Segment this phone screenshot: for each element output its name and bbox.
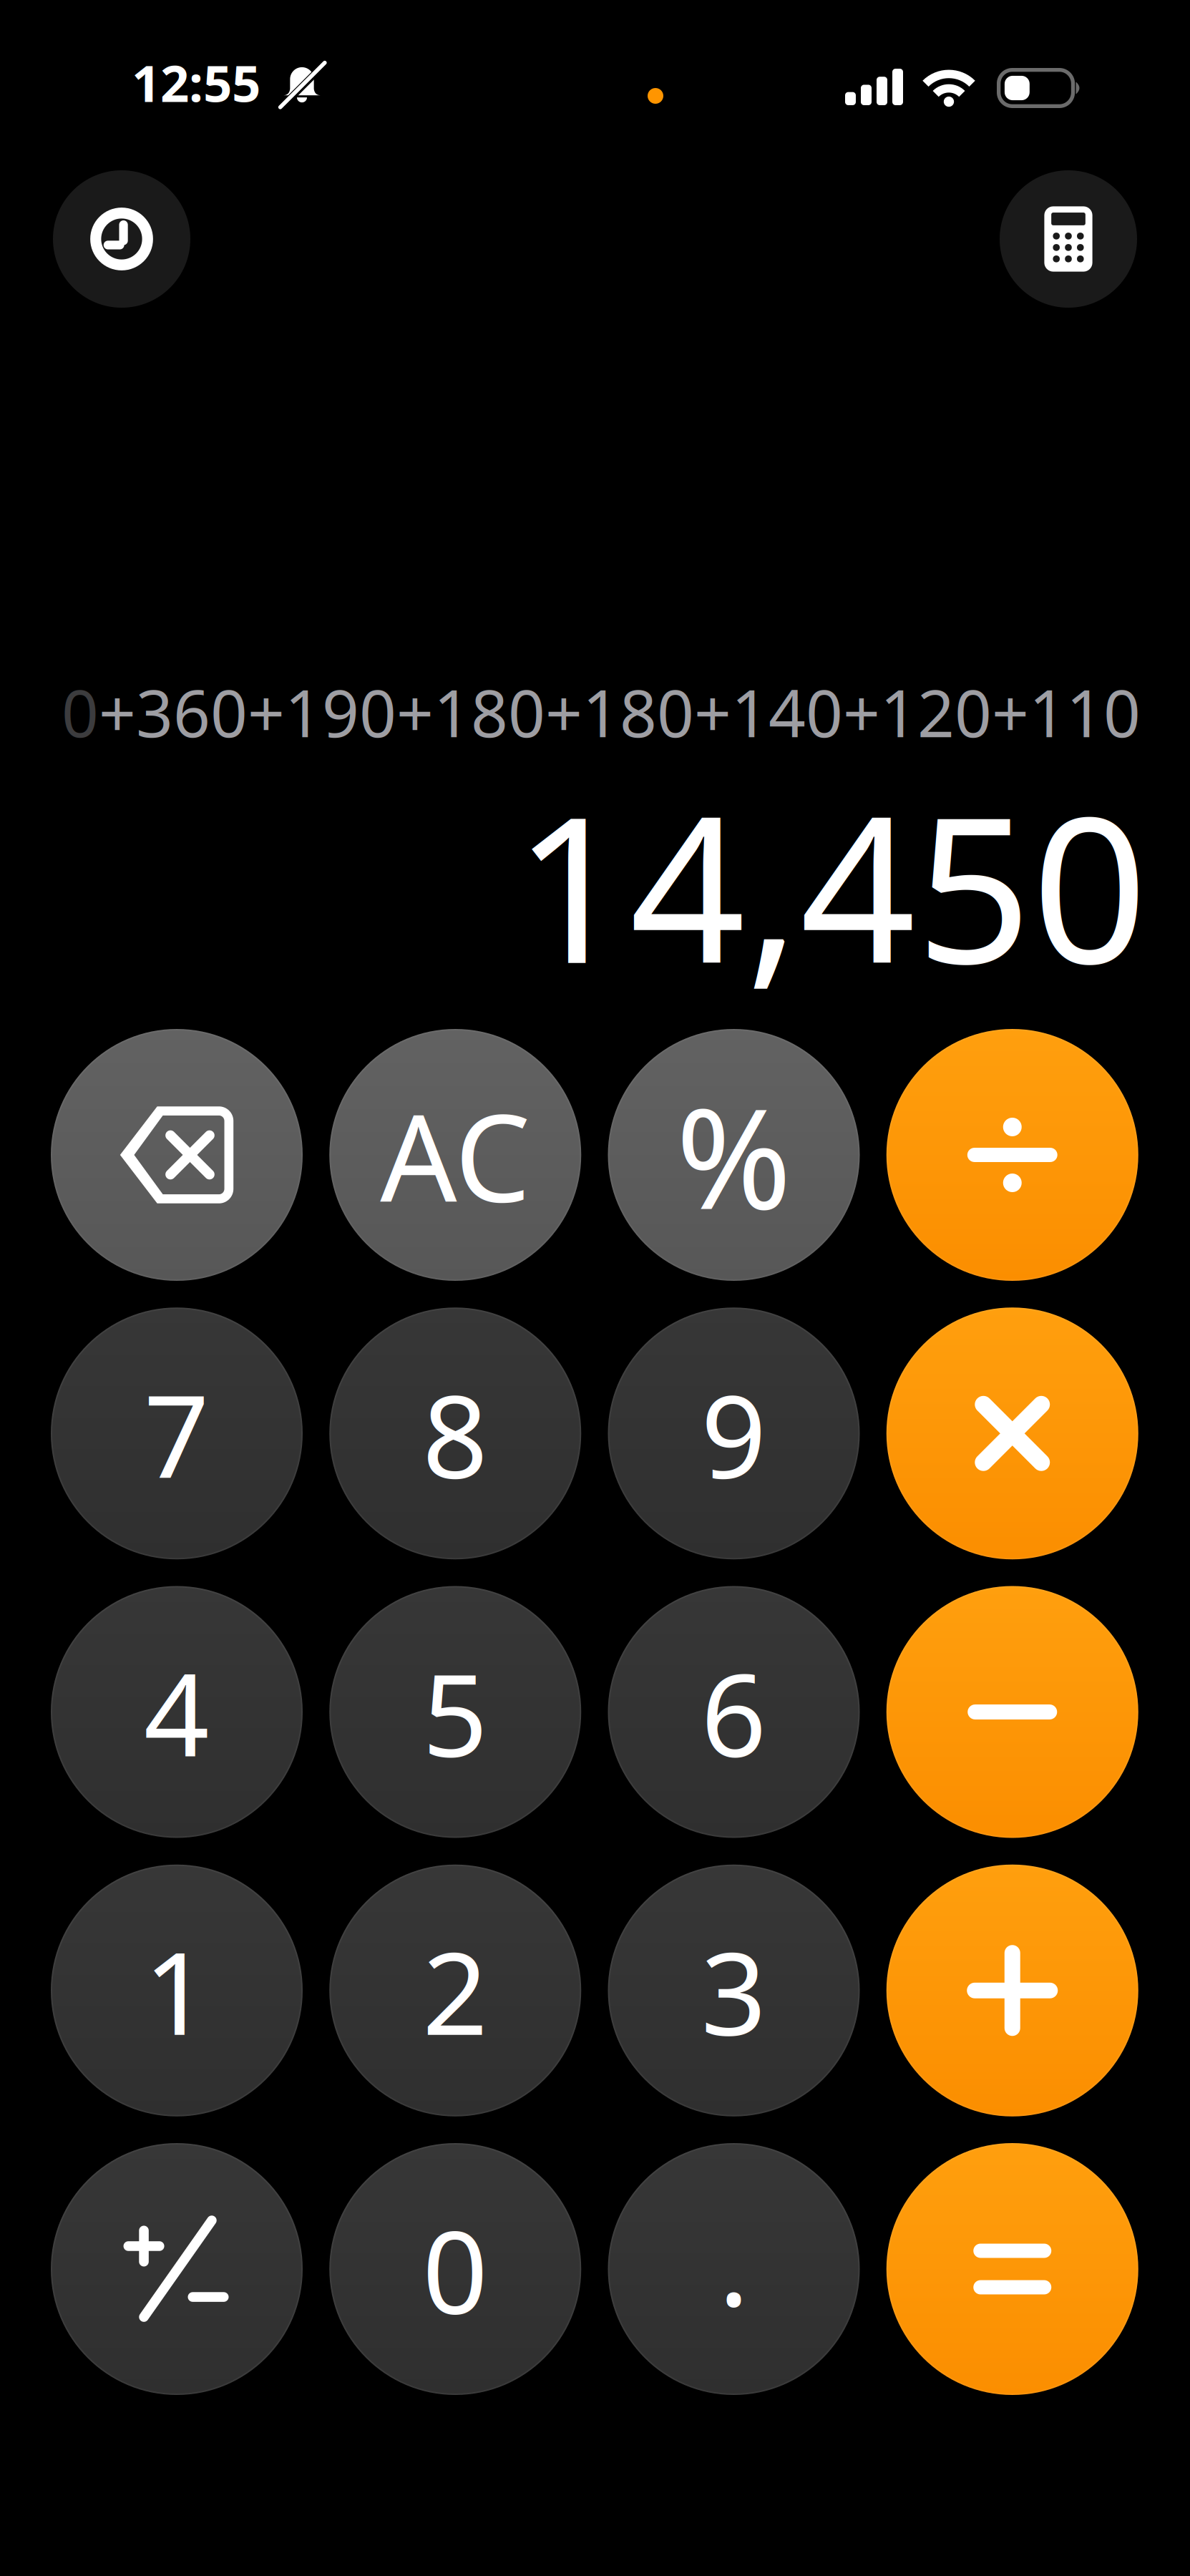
button[interactable]: % <box>608 1029 860 1281</box>
staticText: 12:55 <box>132 49 260 116</box>
staticText: +360+190+180+180+140+120+110 <box>99 669 1141 755</box>
staticText: % <box>676 1062 792 1247</box>
staticText: 5 <box>422 1636 488 1788</box>
staticText: 2 <box>422 1914 488 2067</box>
staticText: AC <box>380 1075 530 1235</box>
staticText: 0 <box>422 2193 488 2345</box>
staticText: 6 <box>701 1636 767 1788</box>
button[interactable]: Delete <box>51 1029 303 1281</box>
button[interactable]: Subtract <box>886 1586 1138 1838</box>
staticText: 14,450 <box>514 750 1148 1019</box>
button[interactable]: Plus minus <box>51 2143 303 2395</box>
button[interactable]: Divide <box>886 1029 1138 1281</box>
button[interactable]: 1 <box>51 1865 303 2116</box>
staticText: 7 <box>144 1357 210 1509</box>
staticText: . <box>718 2186 749 2338</box>
button[interactable]: 6 <box>608 1586 860 1838</box>
button[interactable]: Equals <box>886 2143 1138 2395</box>
staticText: 9 <box>701 1357 767 1509</box>
button[interactable]: Add <box>886 1865 1138 2116</box>
button[interactable]: 3 <box>608 1865 860 2116</box>
button[interactable]: . <box>608 2143 860 2395</box>
button[interactable]: 9 <box>608 1307 860 1559</box>
button[interactable]: 5 <box>329 1586 581 1838</box>
staticText: 1 <box>144 1914 210 2067</box>
button[interactable]: Multiply <box>886 1307 1138 1559</box>
button[interactable]: AC <box>329 1029 581 1281</box>
staticText: 8 <box>422 1357 488 1509</box>
button[interactable]: 2 <box>329 1865 581 2116</box>
button[interactable]: 0 <box>329 2143 581 2395</box>
button[interactable]: Calculator <box>1000 170 1137 308</box>
button[interactable]: 7 <box>51 1307 303 1559</box>
staticText: 4 <box>144 1636 210 1788</box>
staticText: 3 <box>701 1914 767 2067</box>
button[interactable]: 8 <box>329 1307 581 1559</box>
button[interactable]: 4 <box>51 1586 303 1838</box>
staticText: 0 <box>62 669 99 755</box>
button[interactable]: History <box>53 170 190 308</box>
